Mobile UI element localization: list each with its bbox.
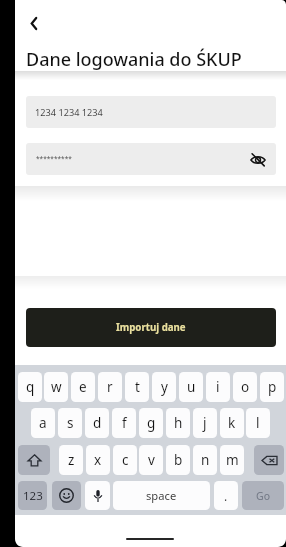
button[interactable]: x [86,445,110,475]
staticText: s [67,414,74,432]
button[interactable]: b [166,445,190,475]
staticText: Dane logowania do ŚKUP [26,47,242,72]
button[interactable]: Go [242,481,284,510]
button[interactable]: t [125,372,149,402]
button[interactable]: j [193,408,217,438]
staticText: g [147,414,156,432]
button[interactable]: c [113,445,137,475]
button[interactable]: y [152,372,176,402]
button[interactable]: 123 [18,481,47,510]
button[interactable]: s [58,408,82,438]
button[interactable]: q [18,372,42,402]
button[interactable]: h [166,408,190,438]
staticText: l [256,414,260,432]
button[interactable]: e [71,372,95,402]
staticText: v [148,451,155,469]
button[interactable]: Backspace [254,445,284,475]
staticText: 1234 1234 1234 [35,106,103,119]
staticText: e [79,378,87,396]
staticText: f [122,414,127,432]
staticText: h [174,414,183,432]
staticText: q [26,378,35,396]
staticText: a [39,414,47,432]
staticText: t [135,378,140,396]
button[interactable]: w [44,372,68,402]
staticText: u [187,378,196,396]
staticText: j [203,414,207,432]
staticText: w [51,378,62,396]
staticText: 123 [23,488,43,504]
staticText: d [93,414,102,432]
button[interactable]: ********** [26,143,276,175]
button[interactable]: space [113,481,210,510]
staticText: p [268,378,277,396]
button[interactable]: Back [18,8,48,38]
staticText: space [146,488,177,503]
staticText: i [216,378,220,396]
button[interactable]: p [260,372,284,402]
button[interactable]: Importuj dane [26,308,276,347]
button[interactable]: o [233,372,257,402]
staticText: c [122,451,129,469]
button[interactable]: 1234 1234 1234 [26,96,276,128]
button[interactable]: . [214,481,238,510]
button[interactable]: g [139,408,163,438]
button[interactable]: Voice input [85,481,110,510]
staticText: n [201,451,210,469]
staticText: r [107,378,113,396]
button[interactable]: a [31,408,55,438]
staticText: Go [256,489,270,503]
button[interactable]: r [98,372,122,402]
button[interactable]: k [220,408,244,438]
button[interactable]: f [112,408,136,438]
staticText: Importuj dane [116,321,186,334]
staticText: y [161,378,168,396]
button[interactable]: m [220,445,244,475]
button[interactable]: d [85,408,109,438]
staticText: z [68,451,75,469]
staticText: k [228,414,236,432]
button[interactable]: l [246,408,270,438]
button[interactable]: Show password [246,147,270,171]
button[interactable]: Emoji [52,481,81,510]
button[interactable]: n [193,445,217,475]
button[interactable]: z [59,445,83,475]
button[interactable]: v [139,445,163,475]
staticText: x [94,451,102,469]
button[interactable]: i [206,372,230,402]
button[interactable]: Shift [18,445,50,475]
staticText: o [241,378,250,396]
staticText: ********** [36,154,72,163]
staticText: m [226,451,239,469]
staticText: b [174,451,183,469]
staticText: . [224,488,228,504]
button[interactable]: u [179,372,203,402]
